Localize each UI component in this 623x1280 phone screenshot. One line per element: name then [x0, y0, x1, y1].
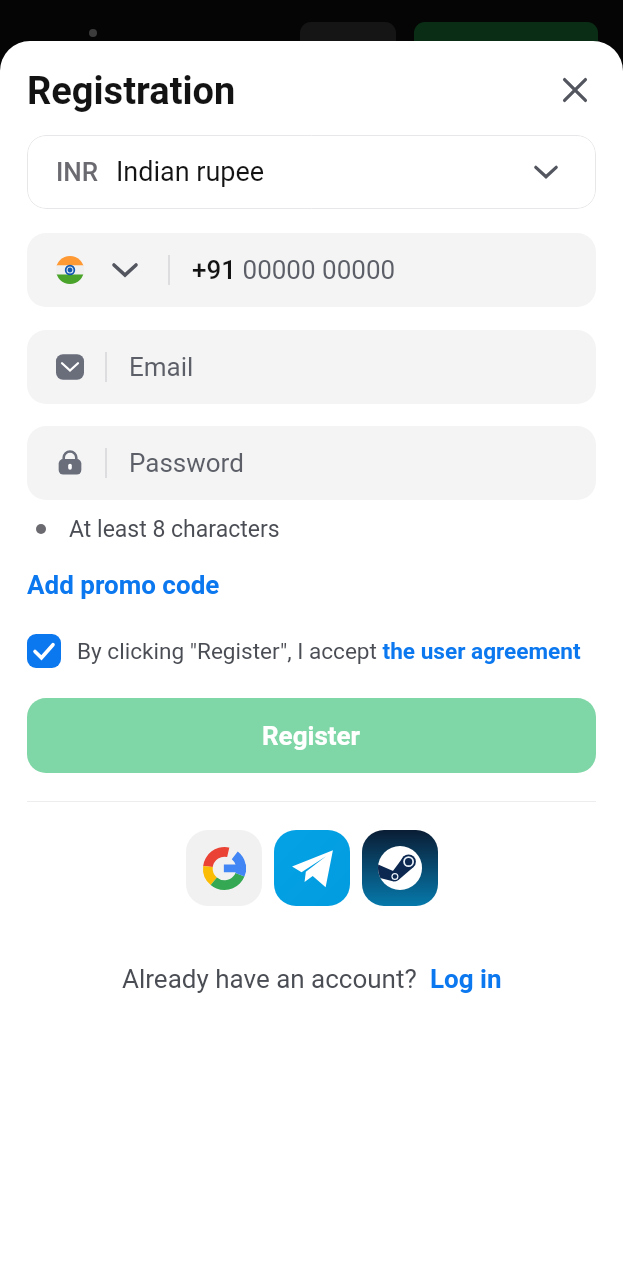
staticText: Registration: [27, 69, 236, 114]
button[interactable]: Sign in with Google: [186, 830, 262, 906]
button[interactable]: Sign in with Telegram: [274, 830, 350, 906]
staticText: Already have an account?: [122, 964, 417, 994]
button[interactable]: Sign in with Steam: [362, 830, 438, 906]
button[interactable]: Password: [27, 426, 596, 500]
staticText: Register: [262, 721, 361, 751]
button[interactable]: By clicking "Register", I accept the use…: [27, 634, 581, 668]
staticText: Log in: [430, 964, 502, 994]
button[interactable]: Close: [557, 72, 593, 108]
staticText: Indian rupee: [116, 156, 265, 188]
staticText: INR: [56, 157, 99, 187]
staticText: +91 00000 00000: [192, 255, 396, 285]
button[interactable]: INR: [27, 135, 596, 209]
button[interactable]: Add promo code: [27, 570, 220, 600]
staticText: Email: [129, 352, 194, 382]
button[interactable]: Email: [27, 330, 596, 404]
staticText: Add promo code: [27, 570, 220, 600]
button[interactable]: +91 00000 00000: [27, 233, 596, 307]
button[interactable]: Register: [27, 698, 596, 773]
button[interactable]: Log in: [430, 964, 502, 994]
staticText: By clicking "Register", I accept the use…: [77, 638, 581, 664]
staticText: At least 8 characters: [69, 516, 280, 543]
staticText: Password: [129, 448, 244, 478]
